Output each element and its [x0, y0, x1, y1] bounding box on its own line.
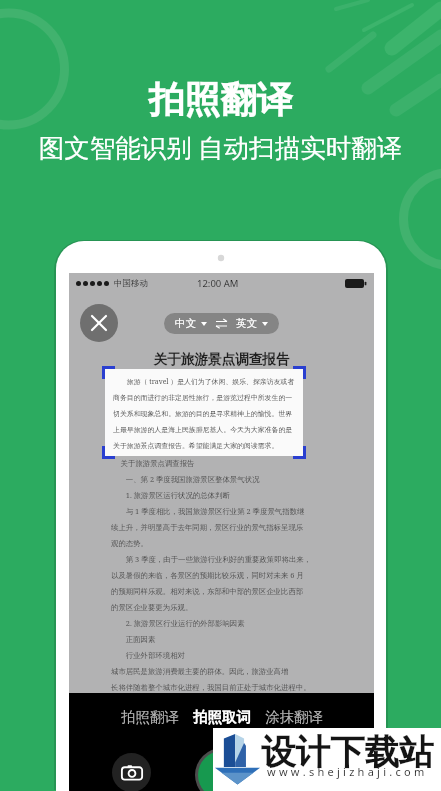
staticText: 12:00 AM [197, 277, 239, 290]
button[interactable]: 拍照翻译 [117, 700, 183, 734]
staticText: 正面因素 [111, 634, 156, 644]
staticText: 观的态势。 [111, 539, 148, 548]
staticText: 以及暑假的来临，各景区的预期比较乐观，同时对未来 6 月 [111, 570, 304, 580]
other: Swap languages [216, 319, 227, 328]
staticText: 旅游（ travel ）是人们为了休闲、娱乐、探亲访友或者 [113, 377, 295, 386]
staticText: 拍照取词 [193, 708, 251, 726]
button[interactable]: 中文 [164, 313, 279, 334]
staticText: 2. 旅游景区行业运行的外部影响因素 [111, 618, 245, 628]
staticText: 与 1 季度相比，我国旅游景区行业第 2 季度景气指数继 [111, 506, 305, 516]
staticText: 英文 [236, 317, 257, 330]
staticText: 设计下载站 [261, 731, 434, 774]
staticText: 关于旅游景点调查报告 [69, 351, 374, 368]
staticText: 中国移动 [114, 278, 148, 289]
staticText: 商务目的而进行的非定居性旅行，是游览过程中所发生的一 [113, 393, 293, 402]
button[interactable]: 涂抹翻译 [261, 700, 327, 734]
staticText: 的景区企业要更为乐观。 [111, 603, 193, 612]
staticText: 切关系和现象总和。旅游的目的是寻求精神上的愉悦。世界 [113, 409, 293, 418]
staticText: 长将伴随着整个城市化进程，我国目前正处于城市化进程中。 [111, 683, 311, 692]
staticText: 续上升，并明显高于去年同期，景区行业的景气指标呈现乐 [111, 523, 304, 532]
button[interactable]: Gallery [112, 753, 151, 791]
staticText: 中文 [175, 317, 196, 330]
button[interactable]: 拍照取词 [189, 700, 255, 734]
staticText: 行业外部环境相对 [111, 650, 185, 660]
staticText: 关于旅游景点调查报告。希望能满足大家的阅读需求。 [113, 441, 279, 450]
staticText: 1. 旅游景区运行状况的总体判断 [111, 490, 230, 500]
staticText: 一、第 2 季度我国旅游景区整体景气状况 [111, 474, 260, 484]
staticText: 上最早旅游的人是海上民族腓尼基人。今天为大家准备的是 [113, 425, 293, 434]
staticText: w w w . s h e j i z h a j i . c o m [267, 764, 425, 779]
staticText: 关于旅游景点调查报告 [111, 458, 195, 468]
staticText: 城市居民是旅游消费最主要的群体。因此，旅游业高增 [111, 667, 289, 676]
staticText: 拍照翻译 [121, 708, 179, 726]
staticText: 的预期同样乐观。相对来说，东部和中部的景区企业比西部 [111, 587, 304, 596]
button[interactable]: Close [80, 304, 118, 342]
staticText: 拍照翻译 [0, 77, 441, 122]
staticText: 图文智能识别 自动扫描实时翻译 [0, 130, 441, 165]
button[interactable]: Shutter [195, 748, 249, 791]
staticText: 涂抹翻译 [265, 708, 323, 726]
staticText: 第 3 季度，由于一些旅游行业利好的重要政策即将出来， [111, 554, 312, 564]
